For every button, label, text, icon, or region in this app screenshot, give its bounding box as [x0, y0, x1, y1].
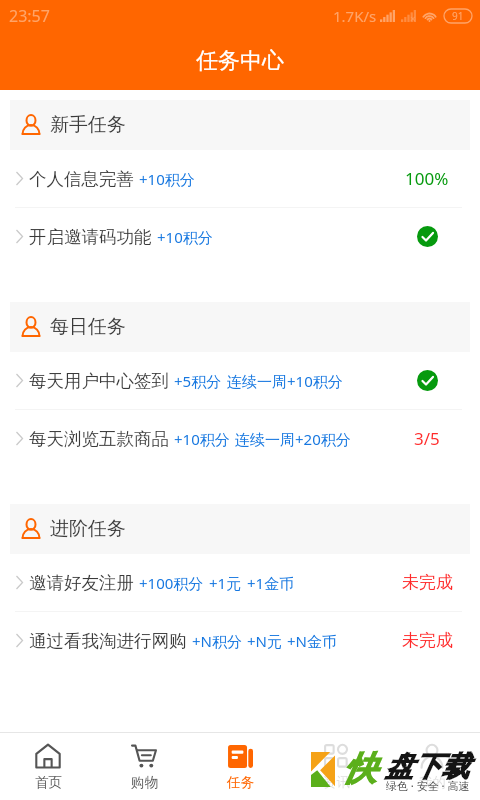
button[interactable]: 通过看我淘进行网购 [0, 612, 480, 669]
staticText: +5积分 [174, 371, 222, 391]
staticText: +N积分 [192, 631, 242, 651]
staticText: 任务 [227, 774, 254, 791]
staticText: +N金币 [287, 631, 337, 651]
staticText: 连续一周+10积分 [227, 371, 343, 391]
staticText: 通过看我淘进行网购 [29, 630, 187, 652]
staticText: +N元 [247, 631, 282, 651]
button[interactable]: 个人信息完善 [0, 150, 480, 207]
staticText: 新手任务 [50, 113, 126, 137]
staticText: 购物 [131, 774, 158, 791]
button[interactable]: 每日任务 [10, 302, 470, 352]
staticText: 邀请好友注册 [29, 572, 134, 594]
staticText: +10积分 [157, 227, 213, 247]
staticText: 每日任务 [50, 315, 126, 339]
staticText: 开启邀请码功能 [29, 226, 152, 248]
staticText: 1.7K/s [333, 6, 377, 26]
button[interactable]: 我的 [384, 733, 480, 800]
staticText: +100积分 [139, 573, 204, 593]
staticText: +1金币 [247, 573, 295, 593]
staticText: 每天浏览五款商品 [29, 428, 169, 450]
button[interactable]: 新手任务 [10, 100, 470, 150]
staticText: 每天用户中心签到 [29, 370, 169, 392]
staticText: 100% [405, 167, 449, 190]
staticText: 连续一周+20积分 [235, 429, 351, 449]
button[interactable]: 资讯 [288, 733, 384, 800]
button[interactable]: 首页 [0, 733, 96, 800]
staticText: 未完成 [402, 572, 453, 593]
staticText: 3/5 [414, 427, 440, 450]
button[interactable]: 购物 [96, 733, 192, 800]
button[interactable]: 任务 [192, 733, 288, 800]
staticText: +1元 [209, 573, 242, 593]
staticText: 盘下载 [385, 749, 469, 784]
staticText: 我的 [419, 774, 446, 791]
staticText: 91 [452, 9, 464, 23]
staticText: 快 [343, 748, 376, 790]
staticText: +10积分 [139, 169, 195, 189]
button[interactable]: 每天浏览五款商品 [0, 410, 480, 467]
staticText: 绿色 · 安全 · 高速 [386, 778, 470, 793]
button[interactable]: 开启邀请码功能 [0, 208, 480, 265]
button[interactable]: 邀请好友注册 [0, 554, 480, 611]
staticText: 进阶任务 [50, 517, 126, 541]
staticText: 未完成 [402, 630, 453, 651]
staticText: 任务中心 [196, 47, 284, 75]
button[interactable]: 进阶任务 [10, 504, 470, 554]
staticText: 个人信息完善 [29, 168, 134, 190]
staticText: 资讯 [323, 774, 350, 791]
staticText: 首页 [35, 774, 62, 791]
button[interactable]: 每天用户中心签到 [0, 352, 480, 409]
staticText: 23:57 [9, 5, 50, 27]
staticText: +10积分 [174, 429, 230, 449]
